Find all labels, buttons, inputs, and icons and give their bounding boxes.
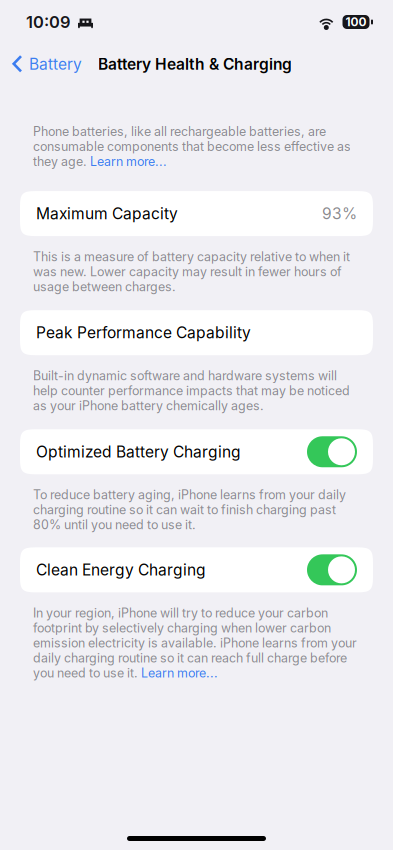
button[interactable]: Peak Performance Capability: [0, 310, 393, 355]
staticText: Maximum Capacity: [36, 204, 178, 223]
staticText: Optimized Battery Charging: [36, 442, 241, 461]
button[interactable]: Optimized Battery Charging: [0, 429, 393, 474]
staticText: 93%: [322, 204, 357, 223]
staticText: Phone batteries, like all rechargeable b…: [33, 124, 351, 169]
button[interactable]: Maximum Capacity: [0, 191, 393, 236]
staticText: Peak Performance Capability: [36, 323, 251, 342]
staticText: 100: [345, 15, 366, 29]
staticText: 10:09: [26, 12, 71, 32]
staticText: Battery: [29, 55, 82, 73]
staticText: In your region, iPhone will try to reduc…: [33, 605, 357, 681]
staticText: To reduce battery aging, iPhone learns f…: [33, 487, 346, 532]
button[interactable]: Battery: [0, 49, 90, 79]
staticText: Battery Health & Charging: [98, 55, 292, 73]
staticText: Clean Energy Charging: [36, 560, 206, 579]
staticText: This is a measure of battery capacity re…: [33, 249, 350, 294]
staticText: Built-in dynamic software and hardware s…: [33, 368, 350, 413]
button[interactable]: Clean Energy Charging: [0, 547, 393, 592]
